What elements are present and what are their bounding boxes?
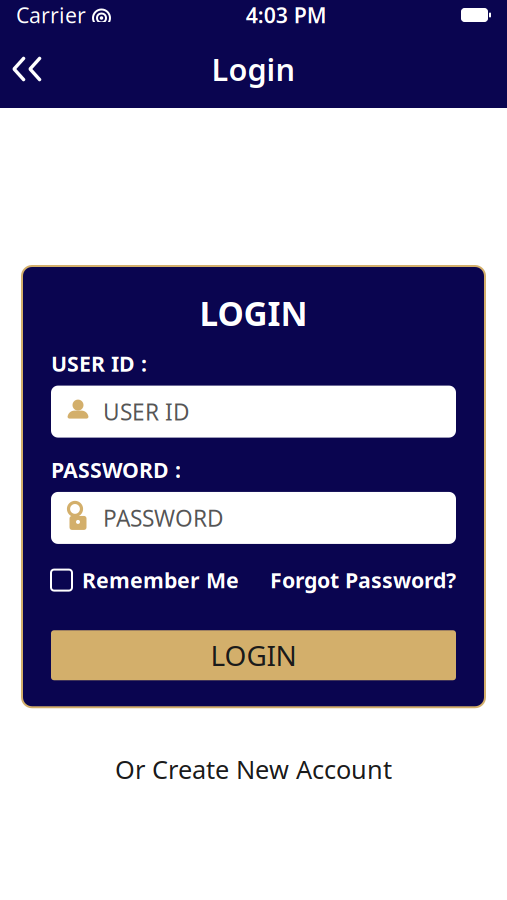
button[interactable]: Remember Me — [51, 560, 239, 600]
staticText: Carrier — [16, 1, 86, 29]
staticText: USER ID : — [51, 349, 147, 378]
staticText: Remember Me — [82, 566, 239, 594]
staticText: PASSWORD : — [51, 456, 181, 484]
button[interactable]: Or Create New Account — [103, 744, 404, 794]
button[interactable]: Back — [0, 42, 54, 96]
button[interactable]: LOGIN — [51, 630, 456, 680]
button[interactable]: Forgot Password? — [270, 560, 456, 600]
staticText: Or Create New Account — [115, 752, 392, 786]
staticText: 4:03 PM — [246, 1, 327, 29]
staticText: Forgot Password? — [270, 566, 456, 594]
staticText: LOGIN — [199, 291, 307, 335]
staticText: Login — [211, 49, 295, 89]
staticText: PASSWORD — [103, 503, 224, 533]
staticText: LOGIN — [210, 637, 296, 674]
staticText: USER ID — [103, 396, 190, 427]
